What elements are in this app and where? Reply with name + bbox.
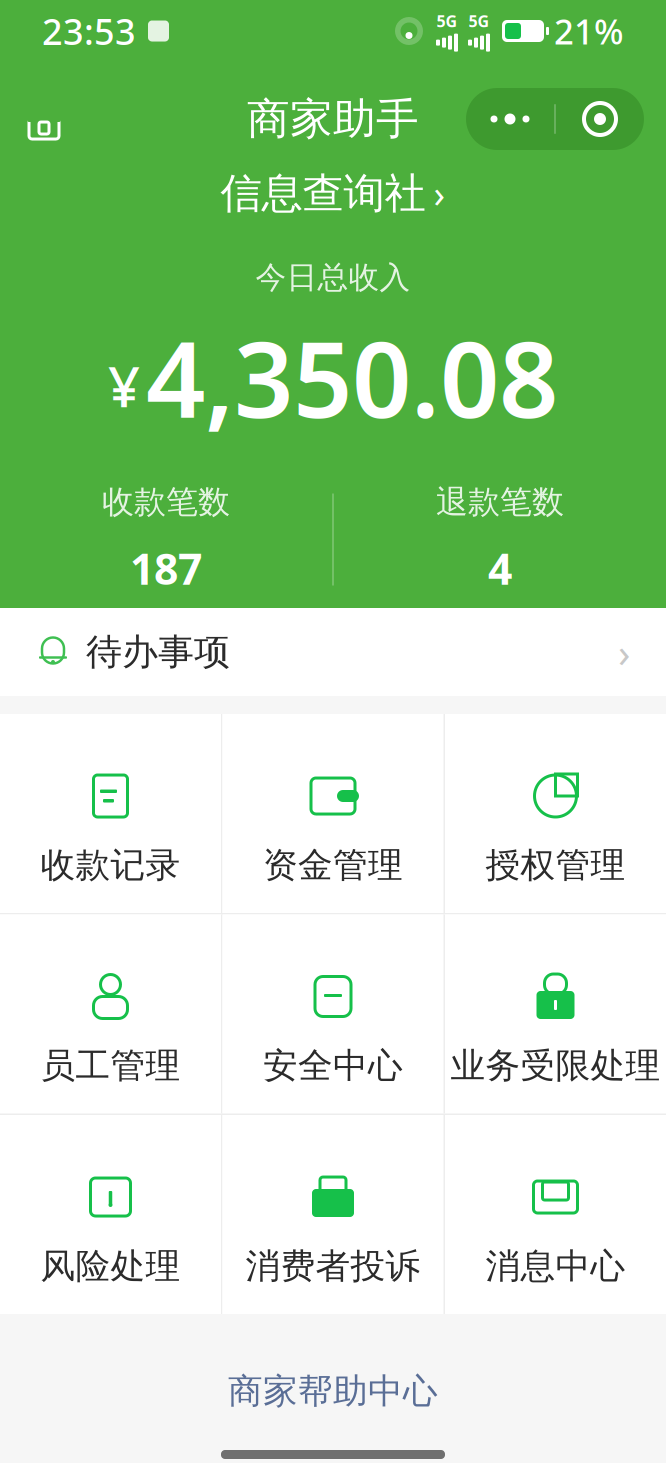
- staticText: 待办事项: [86, 630, 230, 674]
- button[interactable]: 业务受限处理: [445, 914, 666, 1113]
- button[interactable]: 消费者投诉: [222, 1115, 443, 1314]
- staticText: 商家助手: [247, 93, 419, 145]
- staticText: 授权管理: [485, 844, 625, 887]
- button[interactable]: 资金管理: [222, 714, 443, 913]
- staticText: 21%: [554, 8, 624, 54]
- staticText: 消息中心: [485, 1245, 625, 1288]
- staticText: 今日总收入: [255, 259, 410, 296]
- staticText: 风险处理: [40, 1245, 180, 1288]
- staticText: 资金管理: [263, 844, 403, 887]
- staticText: 5G: [468, 10, 489, 32]
- staticText: 员工管理: [40, 1044, 180, 1087]
- staticText: ›: [433, 169, 445, 218]
- button[interactable]: 消息中心: [445, 1115, 666, 1314]
- staticText: 退款笔数: [436, 482, 564, 522]
- staticText: 187: [130, 540, 202, 596]
- staticText: 收款记录: [40, 844, 180, 887]
- button[interactable]: 待办事项: [0, 608, 666, 696]
- staticText: 商家帮助中心: [228, 1370, 438, 1413]
- button[interactable]: 授权管理: [445, 714, 666, 913]
- button[interactable]: 商家帮助中心: [208, 1358, 458, 1425]
- button[interactable]: 安全中心: [222, 914, 443, 1113]
- button[interactable]: 风险处理: [0, 1115, 221, 1314]
- button[interactable]: 员工管理: [0, 914, 221, 1113]
- staticText: 收款笔数: [102, 482, 230, 522]
- staticText: 安全中心: [263, 1044, 403, 1087]
- staticText: 23:53: [42, 7, 136, 55]
- staticText: 4,350.08: [146, 308, 558, 446]
- staticText: 消费者投诉: [245, 1245, 420, 1288]
- staticText: 信息查询社: [220, 168, 425, 219]
- button[interactable]: 信息查询社: [210, 162, 455, 225]
- button[interactable]: 收款记录: [0, 714, 221, 913]
- staticText: 4: [488, 540, 512, 596]
- staticText: 5G: [436, 10, 457, 32]
- staticText: 业务受限处理: [450, 1044, 660, 1087]
- staticText: ›: [618, 625, 630, 678]
- button[interactable]: More: [466, 91, 554, 147]
- button[interactable]: Close mini program: [556, 91, 644, 147]
- button[interactable]: Home: [22, 97, 66, 141]
- staticText: ¥: [108, 348, 140, 423]
